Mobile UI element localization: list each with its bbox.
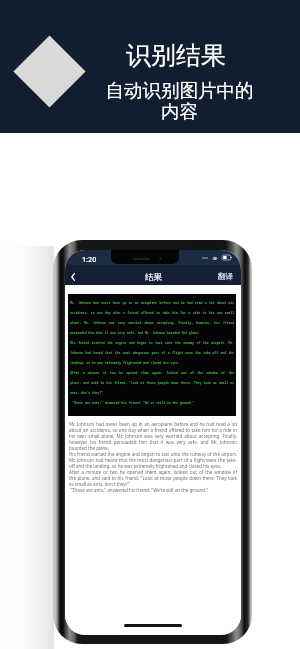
- staticText: 结果: [145, 272, 162, 283]
- staticText: 翻译: [218, 272, 234, 282]
- staticText: Mr. Johnson had never been up in an aero…: [70, 301, 234, 405]
- button[interactable]: 返回: [65, 268, 81, 286]
- staticText: 识别结果: [126, 40, 226, 71]
- button[interactable]: 翻译: [218, 272, 234, 282]
- staticText: 1:20: [82, 254, 97, 264]
- staticText: Mr. Johnson had never been up in an aero…: [69, 421, 237, 493]
- staticText: 自动识别图片中的内容: [104, 79, 255, 123]
